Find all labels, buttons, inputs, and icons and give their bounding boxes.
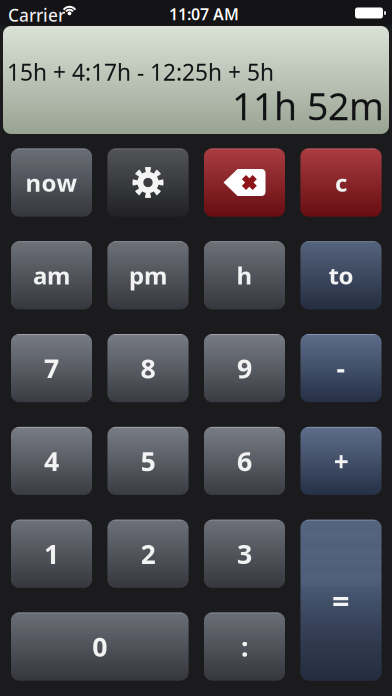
button[interactable]: Settings [107, 148, 188, 216]
staticText: h [236, 259, 252, 291]
staticText: - [336, 350, 345, 386]
staticText: to [328, 259, 353, 291]
button[interactable]: : [204, 612, 285, 680]
staticText: c [335, 167, 347, 198]
button[interactable]: + [300, 427, 381, 495]
button[interactable]: to [300, 241, 381, 309]
staticText: 6 [237, 443, 252, 479]
button[interactable]: 6 [204, 427, 285, 495]
staticText: 0 [92, 629, 107, 664]
button[interactable]: 7 [11, 334, 92, 402]
button[interactable]: c [300, 148, 381, 216]
button[interactable]: 1 [11, 520, 92, 588]
staticText: pm [129, 259, 167, 291]
staticText: 1 [44, 536, 59, 571]
staticText: am [33, 259, 70, 291]
button[interactable]: 0 [11, 612, 188, 680]
button[interactable]: 2 [107, 520, 188, 588]
button[interactable]: h [204, 241, 285, 309]
staticText: 11:07 AM [169, 3, 239, 25]
staticText: 2 [140, 536, 155, 571]
staticText: Carrier [8, 3, 65, 26]
button[interactable]: 4 [11, 427, 92, 495]
button[interactable]: 9 [204, 334, 285, 402]
staticText: + [333, 443, 348, 479]
staticText: 5 [140, 443, 155, 479]
staticText: 9 [237, 350, 252, 386]
button[interactable]: 5 [107, 427, 188, 495]
staticText: 7 [44, 350, 59, 386]
staticText: : [241, 629, 248, 664]
staticText: now [25, 167, 77, 198]
button[interactable]: 3 [204, 520, 285, 588]
button[interactable]: 8 [107, 334, 188, 402]
staticText: 15h + 4:17h - 12:25h + 5h [7, 57, 274, 87]
button[interactable]: pm [107, 241, 188, 309]
staticText: 8 [140, 350, 155, 386]
staticText: 4 [44, 443, 59, 479]
staticText: 3 [237, 536, 252, 571]
button[interactable]: now [11, 148, 92, 216]
button[interactable]: Delete [204, 148, 285, 216]
button[interactable]: = [300, 520, 381, 680]
button[interactable]: am [11, 241, 92, 309]
button[interactable]: - [300, 334, 381, 402]
staticText: = [332, 580, 350, 620]
staticText: 11h 52m [232, 81, 384, 131]
